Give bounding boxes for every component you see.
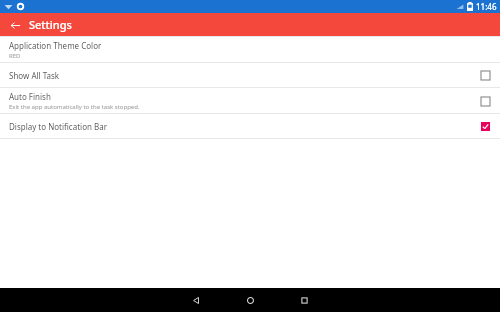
button[interactable]: Show All Task	[0, 63, 500, 87]
staticText: Exit the app automatically to the task s…	[9, 103, 140, 111]
staticText: Application Theme Color	[9, 40, 102, 51]
staticText: Auto Finish	[9, 91, 51, 102]
staticText: RED	[9, 52, 21, 60]
button[interactable]: Recent apps	[277, 288, 331, 312]
button[interactable]: Back	[5, 15, 25, 35]
staticText: 11:46	[476, 1, 497, 12]
button[interactable]: Checked	[478, 119, 492, 133]
button[interactable]: Home	[223, 288, 277, 312]
staticText: Show All Task	[9, 70, 60, 81]
button[interactable]: Auto Finish	[0, 88, 500, 113]
staticText: Display to Notification Bar	[9, 121, 107, 132]
button[interactable]: Display to Notification Bar	[0, 114, 500, 138]
button[interactable]: Back	[169, 288, 223, 312]
button[interactable]: Unchecked	[478, 94, 492, 108]
button[interactable]: Unchecked	[478, 68, 492, 82]
staticText: Settings	[29, 17, 72, 32]
button[interactable]: Application Theme Color	[0, 37, 500, 62]
